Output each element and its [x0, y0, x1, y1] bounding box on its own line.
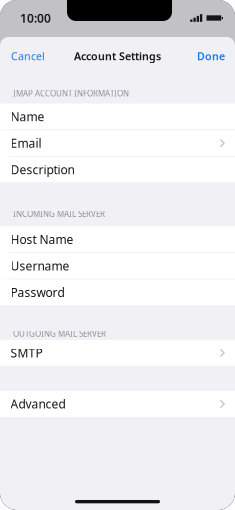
staticText: 10:00: [20, 10, 51, 26]
button[interactable]: Email: [0, 130, 235, 156]
staticText: Advanced: [10, 396, 65, 412]
staticText: Email: [10, 135, 41, 151]
staticText: OUTGOING MAIL SERVER: [13, 328, 106, 339]
staticText: Done: [197, 49, 225, 63]
staticText: Host Name: [10, 231, 73, 247]
staticText: SMTP: [10, 345, 42, 361]
staticText: Username: [10, 258, 69, 274]
button[interactable]: Done: [189, 43, 235, 69]
staticText: Cancel: [11, 49, 45, 63]
staticText: Account Settings: [74, 49, 161, 63]
button[interactable]: SMTP: [0, 340, 235, 366]
staticText: IMAP ACCOUNT INFORMATION: [13, 88, 129, 99]
button[interactable]: Host Name: [0, 226, 235, 252]
button[interactable]: Password: [0, 279, 235, 305]
staticText: INCOMING MAIL SERVER: [13, 209, 105, 219]
button[interactable]: Cancel: [0, 43, 53, 69]
button[interactable]: Advanced: [0, 391, 235, 417]
staticText: Password: [10, 284, 64, 300]
button[interactable]: Username: [0, 253, 235, 279]
staticText: Description: [10, 162, 74, 178]
button[interactable]: Name: [0, 104, 235, 130]
button[interactable]: Description: [0, 157, 235, 183]
staticText: Name: [10, 109, 44, 125]
